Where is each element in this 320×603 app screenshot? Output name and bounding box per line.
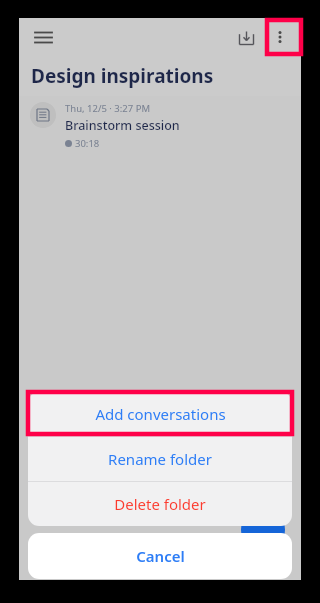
staticText: Cancel (136, 546, 185, 566)
staticText: Thu, 12/5 · 3:27 PM (65, 102, 151, 115)
button[interactable]: Download (231, 22, 261, 52)
button[interactable]: Thu, 12/5 · 3:27 PM (19, 96, 301, 152)
staticText: 30:18 (75, 137, 100, 150)
button[interactable]: More options (265, 22, 295, 52)
button[interactable]: Add conversations (28, 392, 292, 436)
staticText: Add conversations (95, 404, 226, 424)
button[interactable]: New conversation (241, 508, 285, 552)
button[interactable]: Cancel (28, 533, 292, 579)
staticText: Delete folder (114, 494, 206, 514)
button[interactable]: Delete folder (28, 482, 292, 526)
staticText: Design inspirations (31, 63, 214, 89)
button[interactable]: Rename folder (28, 437, 292, 481)
staticText: Rename folder (108, 449, 212, 469)
staticText: Brainstorm session (65, 117, 180, 134)
button[interactable]: Menu (28, 22, 58, 52)
